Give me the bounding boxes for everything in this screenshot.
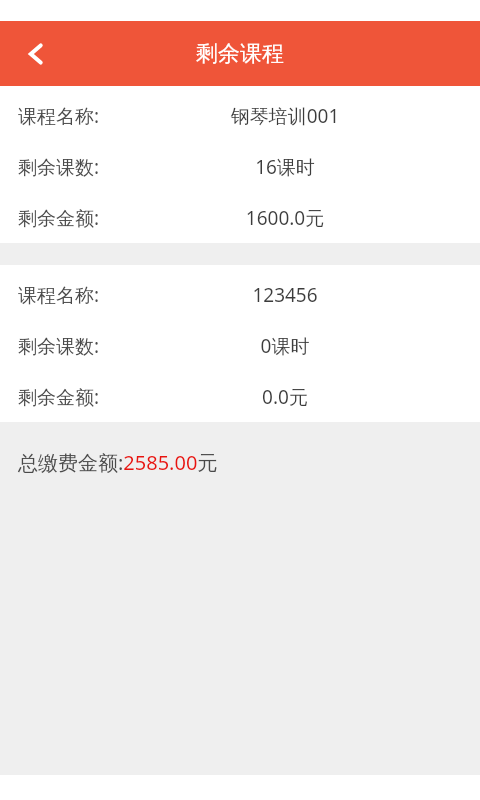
- staticText: 剩余课数:: [18, 333, 100, 359]
- staticText: 剩余金额:: [18, 205, 100, 231]
- staticText: 总缴费金额:2585.00元: [18, 449, 218, 476]
- staticText: 剩余课数:: [18, 154, 100, 180]
- staticText: 16课时: [175, 154, 395, 180]
- staticText: 123456: [175, 282, 395, 308]
- staticText: 课程名称:: [18, 282, 100, 308]
- button[interactable]: Back: [14, 32, 58, 76]
- button[interactable]: 课程名称:: [0, 269, 480, 320]
- staticText: 0课时: [175, 333, 395, 359]
- button[interactable]: 剩余金额:: [0, 192, 480, 243]
- button[interactable]: 剩余课数:: [0, 141, 480, 192]
- staticText: 1600.0元: [175, 205, 395, 231]
- staticText: 钢琴培训001: [175, 103, 395, 129]
- staticText: 课程名称:: [18, 103, 100, 129]
- button[interactable]: 剩余金额:: [0, 371, 480, 422]
- staticText: 剩余课程: [196, 40, 284, 68]
- button[interactable]: 课程名称:: [0, 90, 480, 141]
- staticText: 0.0元: [175, 384, 395, 410]
- staticText: 剩余金额:: [18, 384, 100, 410]
- button[interactable]: 剩余课数:: [0, 320, 480, 371]
